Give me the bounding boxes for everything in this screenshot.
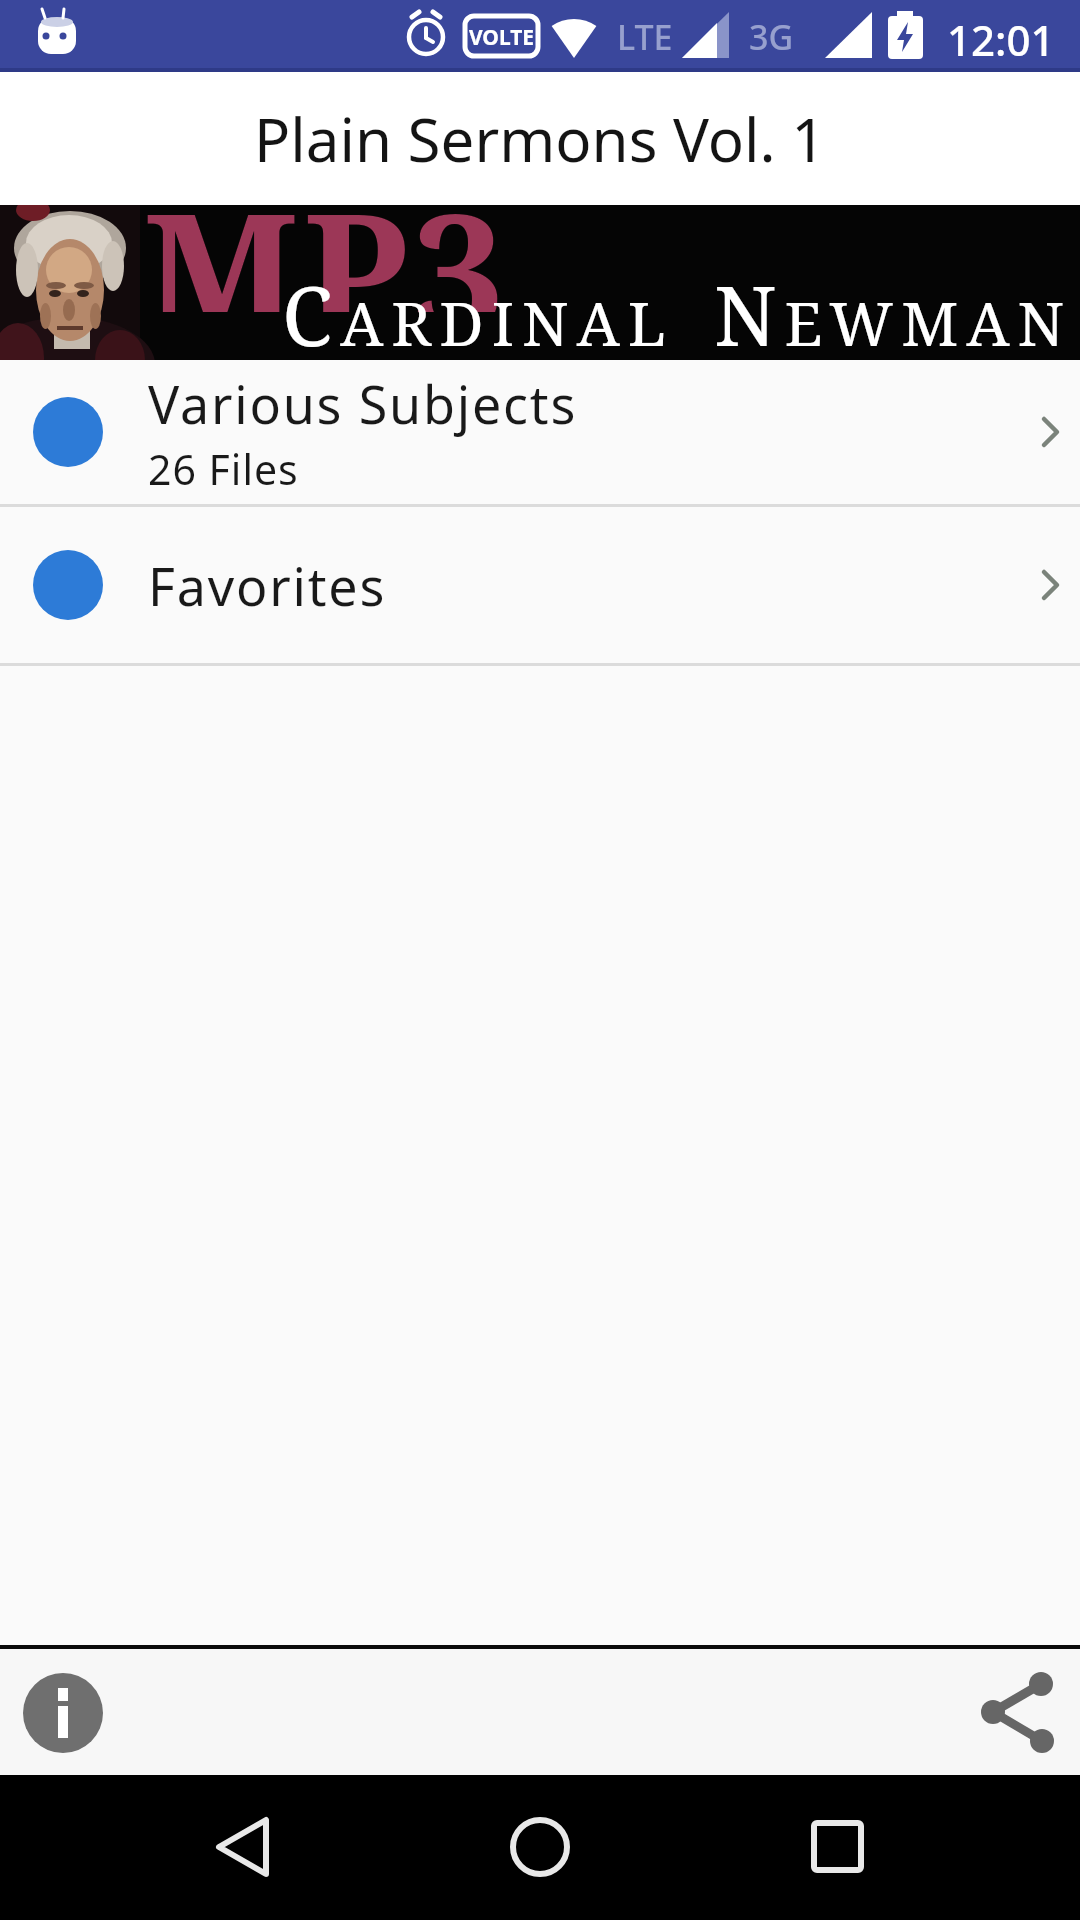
staticText: Various Subjects xyxy=(148,368,578,439)
button[interactable] xyxy=(195,1800,290,1895)
staticText: CARDINAL xyxy=(282,258,674,360)
staticText: 12:01 xyxy=(947,11,1055,68)
staticText: 26 Files xyxy=(148,441,299,497)
staticText: Plain Sermons Vol. 1 xyxy=(254,98,826,180)
button[interactable] xyxy=(492,1800,587,1895)
button[interactable] xyxy=(790,1800,885,1895)
button[interactable] xyxy=(967,1662,1067,1762)
staticText: LTE xyxy=(617,14,673,60)
button[interactable] xyxy=(23,1673,103,1753)
button[interactable]: Various Subjects xyxy=(0,360,1080,504)
staticText: NEWMAN xyxy=(714,258,1072,360)
button[interactable]: Favorites xyxy=(0,507,1080,663)
staticText: Favorites xyxy=(148,550,387,621)
staticText: 3G xyxy=(749,14,794,60)
staticText: VOLTE xyxy=(468,23,535,52)
staticText: MP3 xyxy=(143,205,509,312)
